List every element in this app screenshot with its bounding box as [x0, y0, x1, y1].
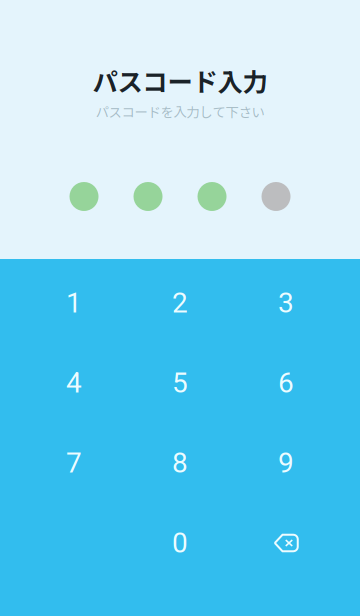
button[interactable]: 1 — [21, 263, 127, 343]
button[interactable]: 0 — [127, 503, 233, 583]
button[interactable]: 7 — [21, 423, 127, 503]
staticText: 0 — [172, 527, 188, 559]
staticText: 7 — [66, 447, 82, 479]
staticText: パスコードを入力して下さい — [95, 102, 264, 121]
button[interactable]: Delete — [233, 503, 339, 583]
staticText: 8 — [172, 447, 188, 479]
button[interactable]: 6 — [233, 343, 339, 423]
button[interactable]: 8 — [127, 423, 233, 503]
button[interactable]: 9 — [233, 423, 339, 503]
staticText: 3 — [278, 287, 294, 319]
button[interactable]: 5 — [127, 343, 233, 423]
button[interactable]: 2 — [127, 263, 233, 343]
button[interactable]: 4 — [21, 343, 127, 423]
staticText: 6 — [278, 367, 294, 399]
staticText: 9 — [278, 447, 294, 479]
staticText: 5 — [172, 367, 188, 399]
staticText: 1 — [66, 287, 82, 319]
button[interactable]: 3 — [233, 263, 339, 343]
staticText: パスコード入力 — [92, 62, 267, 99]
staticText: 4 — [66, 367, 82, 399]
staticText: 2 — [172, 287, 188, 319]
